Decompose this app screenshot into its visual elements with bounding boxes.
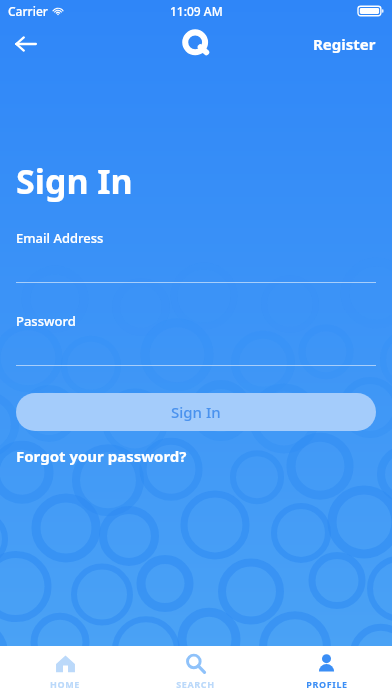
staticText: Email Address [16, 229, 104, 247]
button[interactable]: Sign In [16, 393, 376, 431]
staticText: 11:09 AM [170, 3, 223, 19]
button[interactable]: HOME [0, 646, 130, 696]
staticText: Password [16, 312, 76, 330]
staticText: Carrier [8, 3, 48, 19]
staticText: Sign In [16, 158, 133, 204]
button[interactable]: SEARCH [130, 646, 261, 696]
staticText: Register [313, 34, 376, 54]
staticText: PROFILE [306, 678, 348, 690]
staticText: HOME [50, 678, 80, 690]
button[interactable]: Email Address [0, 229, 392, 283]
button[interactable]: Back [6, 24, 46, 64]
staticText: SEARCH [176, 678, 215, 690]
button[interactable]: Register [297, 26, 392, 62]
button[interactable]: Forgot your password? [16, 446, 187, 466]
button[interactable]: PROFILE [261, 646, 392, 696]
staticText: Sign In [171, 402, 221, 422]
button[interactable]: Logo [176, 24, 216, 64]
button[interactable]: Password [0, 312, 392, 366]
